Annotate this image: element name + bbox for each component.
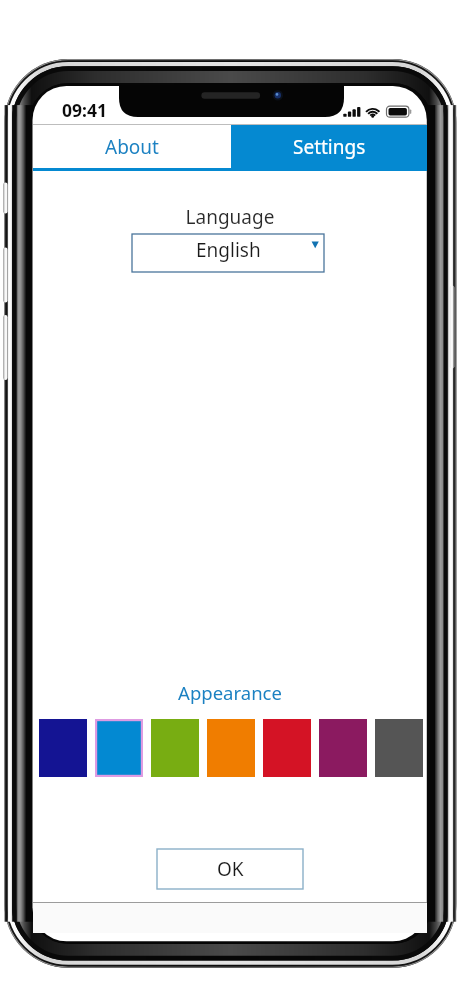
button[interactable]: Settings — [231, 125, 427, 168]
staticText: 09:41 — [62, 98, 107, 122]
staticText: Settings — [293, 134, 366, 160]
staticText: About — [105, 134, 159, 160]
staticText: Appearance — [33, 680, 427, 705]
button[interactable]: OK — [157, 849, 303, 889]
staticText: OK — [217, 856, 244, 882]
button[interactable]: About — [33, 125, 231, 168]
staticText: English — [196, 237, 261, 263]
button[interactable]: Theme colour — [95, 719, 143, 777]
button[interactable]: English — [132, 234, 324, 272]
staticText: Language — [33, 204, 427, 230]
